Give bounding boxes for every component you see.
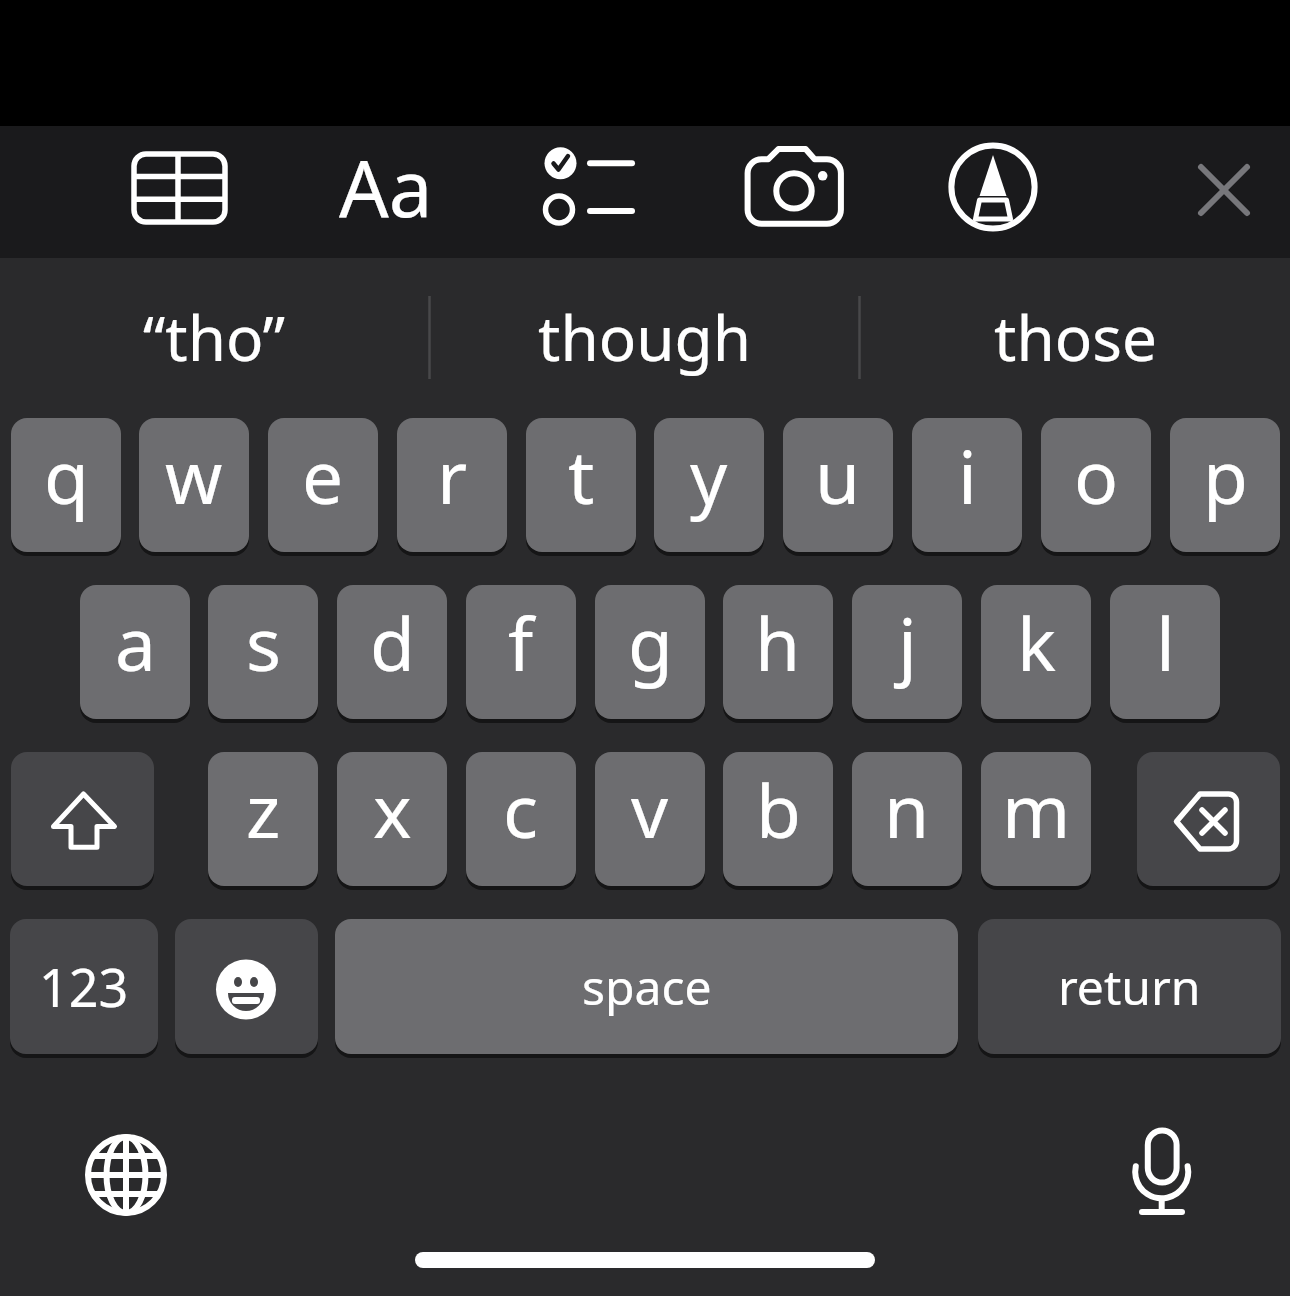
- button[interactable]: m: [981, 752, 1091, 886]
- staticText: though: [538, 295, 751, 379]
- button[interactable]: y: [654, 418, 764, 552]
- staticText: t: [568, 426, 595, 525]
- button[interactable]: [175, 919, 318, 1054]
- button[interactable]: [1137, 752, 1280, 886]
- button[interactable]: n: [852, 752, 962, 886]
- button[interactable]: z: [208, 752, 318, 886]
- button[interactable]: those: [860, 262, 1290, 412]
- staticText: y: [690, 426, 728, 525]
- button[interactable]: Aa: [330, 134, 442, 238]
- button[interactable]: [86, 1135, 166, 1215]
- button[interactable]: [538, 143, 642, 235]
- staticText: q: [44, 426, 89, 525]
- button[interactable]: o: [1041, 418, 1151, 552]
- button[interactable]: k: [981, 585, 1091, 719]
- button[interactable]: l: [1110, 585, 1220, 719]
- staticText: u: [815, 426, 861, 525]
- button[interactable]: v: [595, 752, 705, 886]
- staticText: c: [503, 760, 539, 859]
- button[interactable]: [124, 144, 236, 234]
- staticText: k: [1017, 593, 1056, 692]
- button[interactable]: f: [466, 585, 576, 719]
- staticText: b: [756, 760, 801, 859]
- button[interactable]: d: [337, 585, 447, 719]
- staticText: those: [994, 295, 1157, 379]
- staticText: v: [631, 760, 669, 859]
- button[interactable]: b: [723, 752, 833, 886]
- staticText: d: [370, 593, 415, 692]
- staticText: return: [1058, 954, 1201, 1019]
- staticText: Aa: [339, 134, 433, 238]
- button[interactable]: j: [852, 585, 962, 719]
- staticText: f: [508, 593, 534, 692]
- button[interactable]: r: [397, 418, 507, 552]
- button[interactable]: h: [723, 585, 833, 719]
- staticText: j: [898, 593, 917, 692]
- button[interactable]: p: [1170, 418, 1280, 552]
- staticText: space: [582, 954, 712, 1019]
- button[interactable]: c: [466, 752, 576, 886]
- button[interactable]: [740, 140, 850, 235]
- staticText: g: [628, 593, 673, 692]
- button[interactable]: s: [208, 585, 318, 719]
- staticText: i: [958, 426, 977, 525]
- button[interactable]: u: [783, 418, 893, 552]
- staticText: 123: [39, 951, 129, 1022]
- staticText: z: [246, 760, 281, 859]
- button[interactable]: w: [139, 418, 249, 552]
- staticText: r: [437, 426, 468, 525]
- staticText: p: [1203, 426, 1248, 525]
- staticText: w: [165, 426, 223, 525]
- staticText: x: [373, 760, 412, 859]
- button[interactable]: q: [11, 418, 121, 552]
- button[interactable]: t: [526, 418, 636, 552]
- button[interactable]: g: [595, 585, 705, 719]
- staticText: l: [1156, 593, 1175, 692]
- staticText: o: [1074, 426, 1119, 525]
- button[interactable]: [945, 139, 1045, 239]
- button[interactable]: x: [337, 752, 447, 886]
- button[interactable]: e: [268, 418, 378, 552]
- staticText: m: [1002, 760, 1071, 859]
- button[interactable]: space: [335, 919, 958, 1054]
- button[interactable]: 123: [10, 919, 158, 1054]
- button[interactable]: though: [430, 262, 859, 412]
- staticText: s: [246, 593, 281, 692]
- button[interactable]: [1122, 1120, 1202, 1220]
- button[interactable]: i: [912, 418, 1022, 552]
- staticText: “tho”: [143, 295, 286, 379]
- staticText: e: [302, 426, 344, 525]
- button[interactable]: [1194, 160, 1254, 220]
- button[interactable]: [11, 752, 154, 886]
- button[interactable]: a: [80, 585, 190, 719]
- button[interactable]: return: [978, 919, 1281, 1054]
- button[interactable]: “tho”: [0, 262, 429, 412]
- staticText: a: [115, 593, 156, 692]
- staticText: h: [755, 593, 801, 692]
- staticText: n: [884, 760, 930, 859]
